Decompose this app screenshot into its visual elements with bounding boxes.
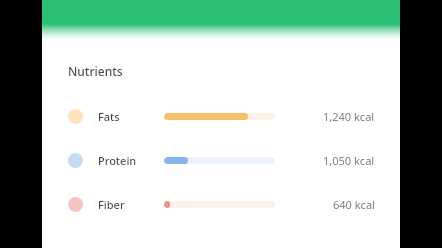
- staticText: Fats: [98, 109, 164, 124]
- staticText: Protein: [98, 153, 164, 168]
- other: Protein: [68, 153, 83, 168]
- button[interactable]: Fats: [42, 94, 400, 138]
- staticText: Fiber: [98, 197, 164, 212]
- button[interactable]: Fiber: [42, 182, 400, 226]
- staticText: 1,050 kcal: [323, 153, 375, 168]
- other: Fats: [68, 109, 83, 124]
- staticText: Nutrients: [68, 63, 123, 79]
- button[interactable]: Protein: [42, 138, 400, 182]
- other: Fiber: [68, 197, 83, 212]
- staticText: 640 kcal: [333, 197, 375, 212]
- staticText: 1,240 kcal: [323, 109, 375, 124]
